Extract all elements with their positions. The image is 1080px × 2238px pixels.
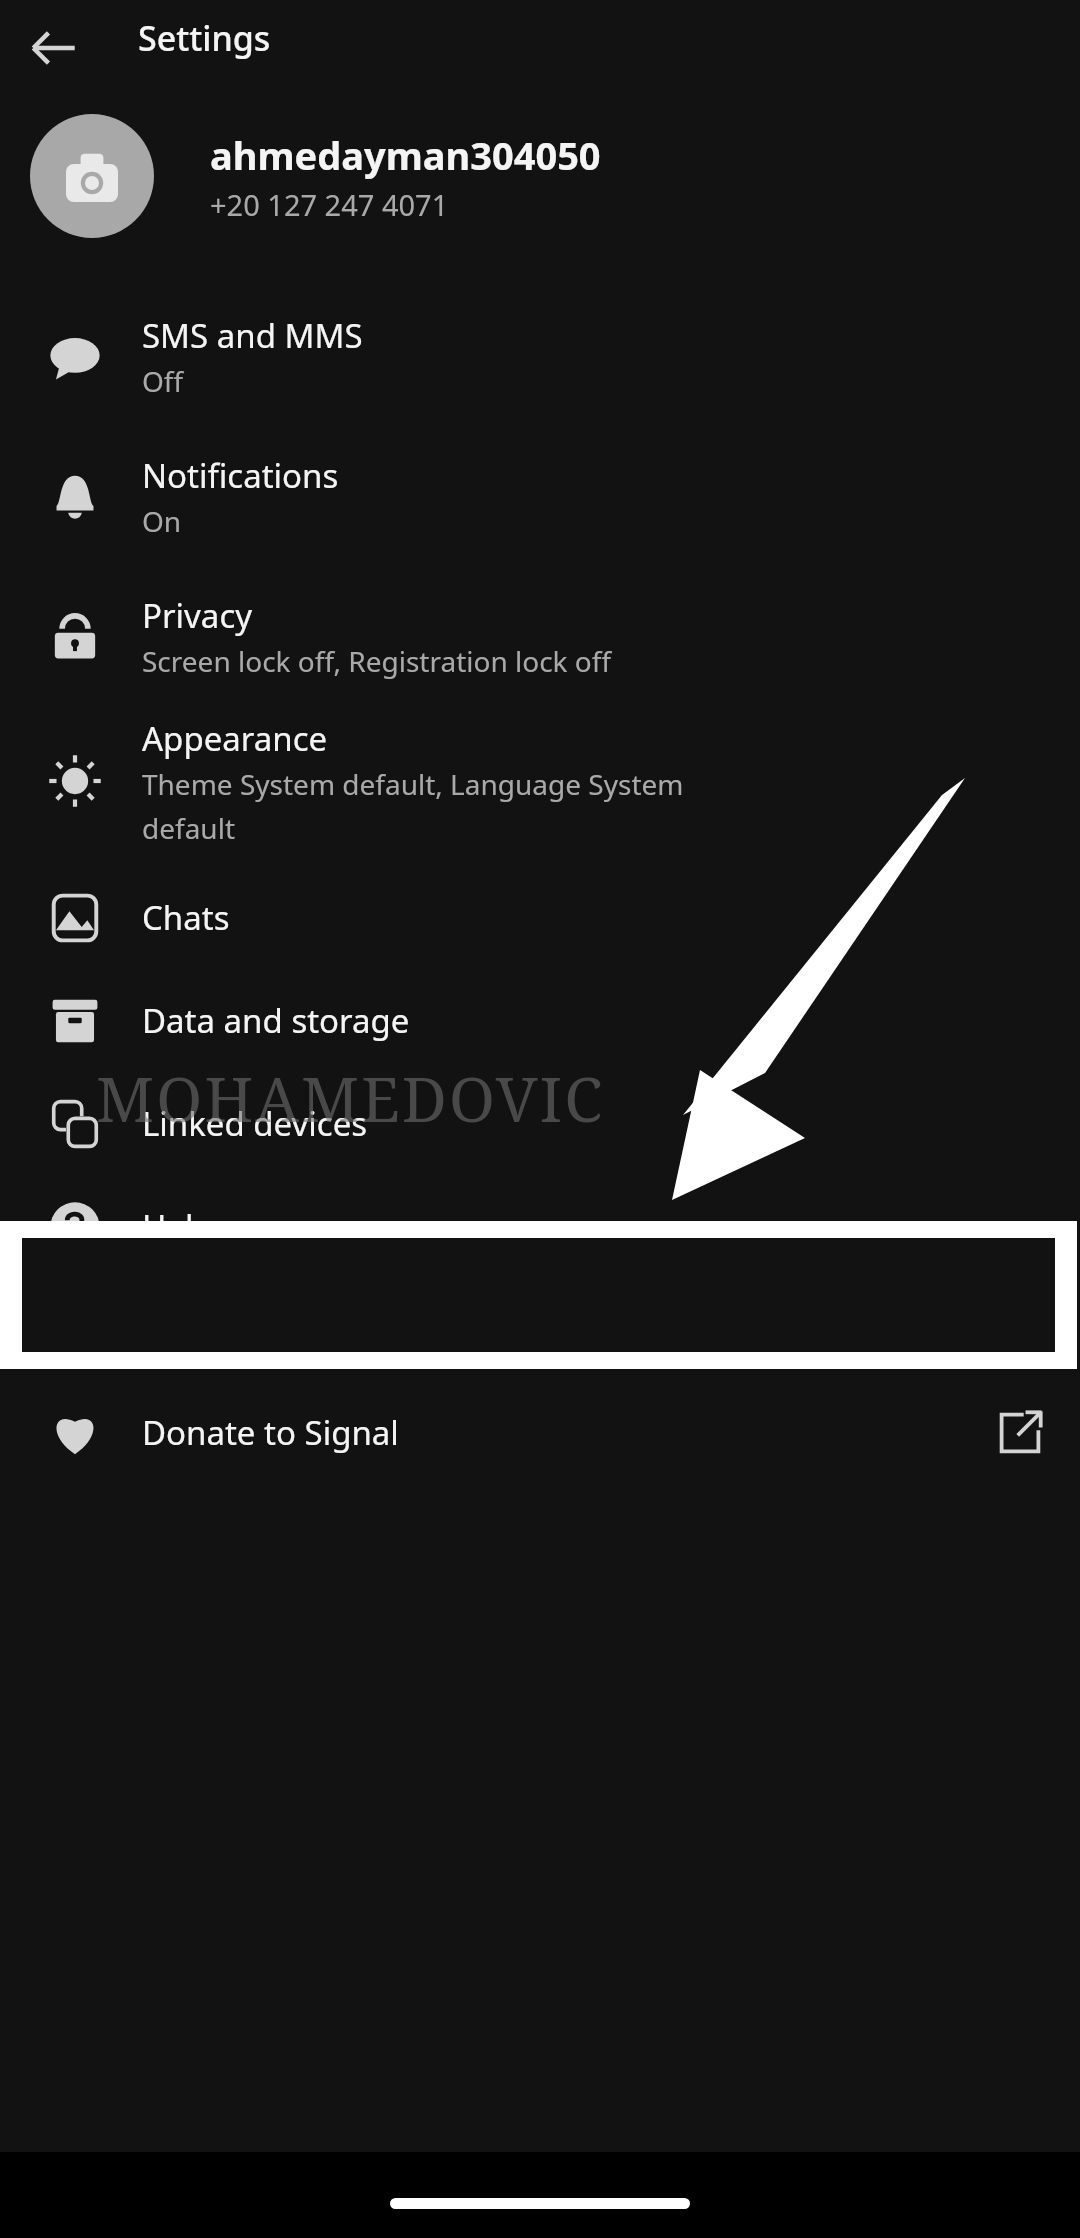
button[interactable]: Back: [16, 10, 92, 86]
staticText: Donate to Signal: [142, 1410, 399, 1455]
button[interactable]: Data and storage: [0, 969, 1080, 1072]
staticText: Settings: [138, 15, 271, 61]
staticText: On: [142, 502, 182, 540]
staticText: Data and storage: [142, 998, 410, 1043]
staticText: SMS and MMS: [142, 313, 363, 358]
staticText: MOHAMEDOVIC: [96, 1056, 605, 1140]
button[interactable]: Open in browser: [982, 1395, 1058, 1471]
staticText: Help: [142, 1204, 214, 1249]
button[interactable]: Chats: [0, 866, 1080, 969]
button[interactable]: Help: [0, 1175, 1080, 1278]
staticText: Linked devices: [142, 1101, 368, 1146]
staticText: Appearance: [142, 716, 328, 761]
staticText: Privacy: [142, 593, 253, 638]
staticText: +20 127 247 4071: [210, 185, 449, 224]
staticText: Notifications: [142, 453, 339, 498]
button[interactable]: SMS and MMS: [0, 286, 1080, 426]
button[interactable]: ahmedayman304050: [0, 96, 1080, 256]
button[interactable]: Notifications: [0, 426, 1080, 566]
button[interactable]: Advanced: [0, 1278, 1080, 1381]
staticText: Off: [142, 362, 184, 400]
staticText: ahmedayman304050: [210, 129, 601, 181]
button[interactable]: Donate to Signal: [0, 1381, 1080, 1484]
button[interactable]: Privacy: [0, 566, 1080, 706]
button[interactable]: Linked devices: [0, 1072, 1080, 1175]
staticText: Theme System default, Language System de…: [142, 765, 684, 847]
staticText: Chats: [142, 895, 230, 940]
staticText: Screen lock off, Registration lock off: [142, 642, 612, 680]
button[interactable]: Appearance: [0, 706, 1080, 856]
